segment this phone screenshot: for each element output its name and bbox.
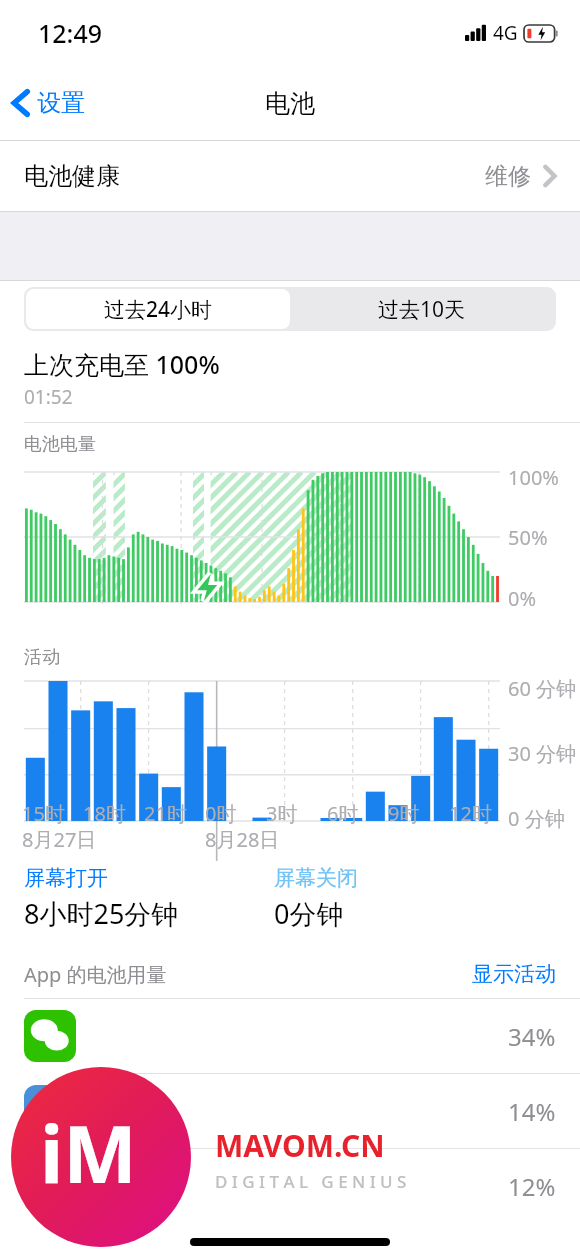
staticText: 维修 [485,162,531,191]
staticText: 50% [508,524,548,551]
staticText: 8月27日 [22,826,97,853]
staticText: 12% [508,1170,556,1203]
staticText: D I G I T A L G E N I U S [215,1170,407,1193]
staticText: 21时 [144,800,187,827]
button[interactable]: 34% [0,999,580,1073]
staticText: 9时 [388,800,420,827]
staticText: 电池健康 [24,161,120,191]
staticText: 6时 [327,800,359,827]
staticText: 京东 [100,1172,146,1201]
staticText: 过去10天 [378,295,466,324]
staticText: 12:49 [38,16,103,50]
staticText: 屏幕关闭 [274,865,358,891]
staticText: 15时 [22,800,65,827]
staticText: 4G [493,20,518,46]
staticText: iM [40,1100,137,1206]
staticText: 12时 [449,800,492,827]
staticText: 3时 [266,800,298,827]
staticText: 活动 [24,646,60,669]
button[interactable]: 电池健康 [0,141,580,211]
staticText: 30 分钟 [508,740,577,767]
staticText: 显示活动 [472,961,556,987]
button[interactable]: 显示活动 [472,961,556,987]
button[interactable]: 设置 [0,66,95,140]
staticText: MAVOM.CN [215,1125,385,1166]
staticText: 0分钟 [274,895,344,932]
button[interactable]: 理 [0,1074,580,1148]
staticText: 01:52 [24,384,73,410]
staticText: 过去24小时 [104,295,213,324]
button[interactable]: 过去10天 [290,289,554,329]
staticText: 18时 [83,800,126,827]
staticText: 上次充电至 100% [24,347,220,381]
staticText: 设置 [37,88,85,118]
staticText: 8月28日 [205,826,280,853]
staticText: 电池 [265,88,315,119]
staticText: 14% [508,1095,556,1128]
button[interactable]: 过去24小时 [26,289,290,329]
staticText: 0% [508,585,537,612]
staticText: 60 分钟 [508,675,577,702]
staticText: App 的电池用量 [24,961,167,988]
staticText: 8小时25分钟 [24,895,179,932]
staticText: 0 分钟 [508,805,565,832]
staticText: 34% [508,1020,556,1053]
staticText: 屏幕打开 [24,865,108,891]
staticText: 电池电量 [24,433,96,456]
staticText: 0时 [205,800,237,827]
staticText: 100% [508,464,559,491]
button[interactable]: 京东 [0,1149,580,1223]
